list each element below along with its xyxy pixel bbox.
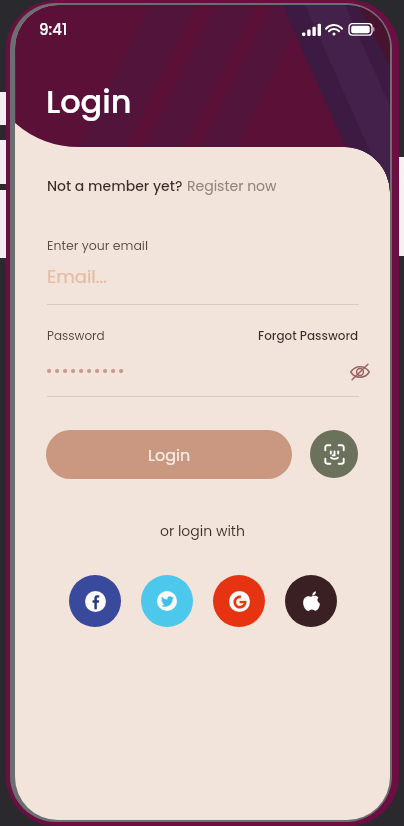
button[interactable]: Twitter [141, 575, 193, 627]
button[interactable]: Show password [345, 357, 375, 387]
staticText: Email... [47, 264, 108, 289]
staticText: or login with [160, 521, 245, 541]
button[interactable]: Google [213, 575, 265, 627]
button[interactable]: Face ID login [310, 430, 358, 478]
button[interactable]: Register now [187, 176, 277, 196]
button[interactable]: Facebook [69, 575, 121, 627]
staticText: Not a member yet? [47, 176, 187, 196]
button[interactable]: Login [46, 430, 292, 479]
staticText: Password [47, 327, 105, 344]
button[interactable]: Forgot Password [258, 327, 359, 344]
button[interactable]: Apple [285, 575, 337, 627]
staticText: 9:41 [39, 19, 68, 40]
staticText: Login [46, 79, 132, 124]
staticText: Login [148, 444, 191, 466]
staticText: Enter your email [47, 237, 148, 254]
